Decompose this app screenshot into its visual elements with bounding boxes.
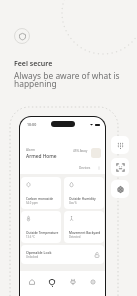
- button[interactable]: Outside Temperature: [21, 211, 61, 243]
- staticText: Openable Lock: [26, 250, 52, 255]
- button[interactable]: Alarm settings: [91, 148, 101, 158]
- button[interactable]: Openable Lock: [21, 245, 104, 264]
- button[interactable]: Security: [43, 271, 61, 291]
- button[interactable]: Settings: [84, 271, 102, 291]
- staticText: 13.6 °C: [26, 235, 35, 239]
- button[interactable]: Home: [23, 271, 41, 291]
- staticText: Armed Home: [26, 153, 57, 160]
- staticText: 10:00: [27, 122, 37, 127]
- staticText: Devices: [79, 166, 91, 170]
- button[interactable]: Devices: [64, 271, 82, 291]
- staticText: Gas %: [69, 201, 77, 205]
- staticText: Outside Temperature: [26, 231, 59, 235]
- button[interactable]: Sensors: [111, 180, 129, 198]
- button[interactable]: More: [97, 166, 101, 170]
- button[interactable]: Face scan: [111, 158, 129, 176]
- staticText: Movement Backyard: [69, 231, 101, 235]
- staticText: Outside Humidity: [69, 197, 96, 201]
- staticText: 54.0 ppm: [26, 201, 38, 205]
- staticText: Unlocked: [26, 255, 39, 259]
- staticText: Alarm: [26, 148, 35, 152]
- staticText: Always be aware of what is happening: [14, 70, 120, 90]
- staticText: Feel secure: [14, 59, 53, 69]
- staticText: Detected: [69, 235, 81, 239]
- staticText: Carbon monoxide: [26, 197, 54, 201]
- button[interactable]: Outside Humidity: [64, 177, 104, 209]
- button[interactable]: Carbon monoxide: [21, 177, 61, 209]
- button[interactable]: Keypad: [111, 136, 129, 154]
- button[interactable]: Movement Backyard: [64, 211, 104, 243]
- staticText: 45% Away: [73, 149, 88, 153]
